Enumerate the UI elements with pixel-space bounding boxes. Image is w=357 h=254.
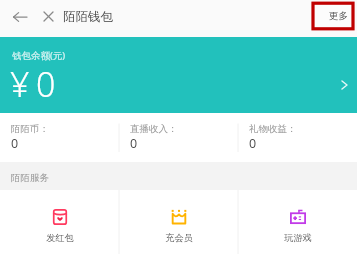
staticText: 充会员 bbox=[165, 232, 193, 244]
staticText: 玩游戏 bbox=[284, 232, 312, 244]
button[interactable]: 发红包 bbox=[0, 190, 119, 254]
staticText: 直播收入： bbox=[130, 123, 178, 135]
button[interactable]: 更多 bbox=[314, 5, 353, 27]
button[interactable]: 玩游戏 bbox=[238, 190, 357, 254]
staticText: 礼物收益： bbox=[249, 123, 297, 135]
button[interactable]: 直播收入： bbox=[119, 113, 238, 162]
staticText: 陌陌服务 bbox=[11, 172, 49, 184]
button[interactable]: 礼物收益： bbox=[238, 113, 357, 162]
staticText: 更多 bbox=[329, 10, 348, 22]
staticText: 钱包余额(元) bbox=[12, 49, 66, 62]
staticText: 陌陌币： bbox=[11, 123, 49, 135]
button[interactable]: Back bbox=[6, 1, 34, 32]
staticText: 0 bbox=[36, 61, 56, 107]
button[interactable]: Close bbox=[38, 1, 59, 32]
staticText: 发红包 bbox=[46, 232, 74, 244]
staticText: 0 bbox=[130, 135, 138, 152]
staticText: ¥ bbox=[10, 61, 30, 107]
staticText: 0 bbox=[11, 135, 19, 152]
button[interactable]: 陌陌币： bbox=[0, 113, 119, 162]
staticText: 陌陌钱包 bbox=[63, 9, 113, 25]
staticText: 0 bbox=[249, 135, 257, 152]
button[interactable]: 钱包余额(元) bbox=[0, 37, 357, 113]
button[interactable]: 充会员 bbox=[119, 190, 238, 254]
